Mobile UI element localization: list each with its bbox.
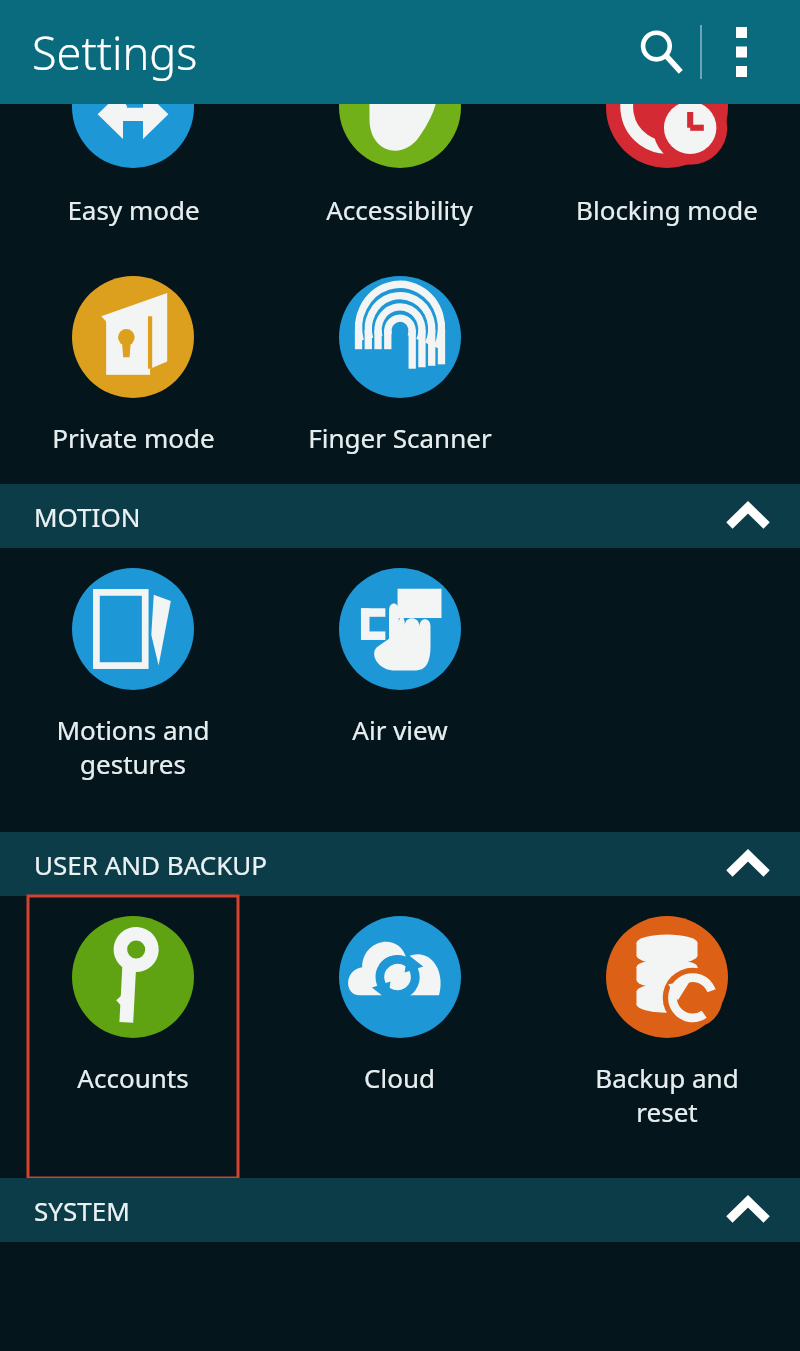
button[interactable]: Cloud bbox=[266, 896, 533, 1178]
staticText: USER AND BACKUP bbox=[34, 847, 268, 882]
button[interactable]: SYSTEM bbox=[0, 1178, 800, 1242]
button[interactable]: Motions and gestures bbox=[0, 548, 266, 832]
other: Collapse MOTION bbox=[724, 502, 772, 530]
staticText: Accessibility bbox=[326, 192, 473, 227]
staticText: Private mode bbox=[52, 420, 215, 455]
staticText: Finger Scanner bbox=[308, 420, 492, 455]
staticText: Motions and gestures bbox=[56, 712, 210, 782]
button[interactable]: Easy mode bbox=[0, 104, 266, 256]
button[interactable]: Air view bbox=[266, 548, 533, 832]
button[interactable]: USER AND BACKUP bbox=[0, 832, 800, 896]
staticText: Backup and reset bbox=[595, 1060, 739, 1130]
other: Collapse SYSTEM bbox=[724, 1196, 772, 1224]
staticText: Accounts bbox=[77, 1060, 189, 1095]
button[interactable]: Backup and reset bbox=[533, 896, 800, 1178]
button[interactable]: Finger Scanner bbox=[266, 256, 533, 484]
button[interactable]: Search bbox=[622, 13, 700, 91]
staticText: MOTION bbox=[34, 499, 141, 534]
staticText: Easy mode bbox=[67, 192, 200, 227]
button[interactable]: MOTION bbox=[0, 484, 800, 548]
button[interactable]: Private mode bbox=[0, 256, 266, 484]
staticText: Blocking mode bbox=[576, 192, 758, 227]
button[interactable]: More options bbox=[702, 13, 780, 91]
button[interactable]: Accounts bbox=[0, 896, 266, 1178]
staticText: Cloud bbox=[364, 1060, 435, 1095]
other: Collapse USER AND BACKUP bbox=[724, 850, 772, 878]
button[interactable]: Blocking mode bbox=[533, 104, 800, 256]
staticText: SYSTEM bbox=[34, 1193, 130, 1228]
staticText: Settings bbox=[32, 22, 198, 83]
staticText: Air view bbox=[352, 712, 448, 747]
button[interactable]: Accessibility bbox=[266, 104, 533, 256]
